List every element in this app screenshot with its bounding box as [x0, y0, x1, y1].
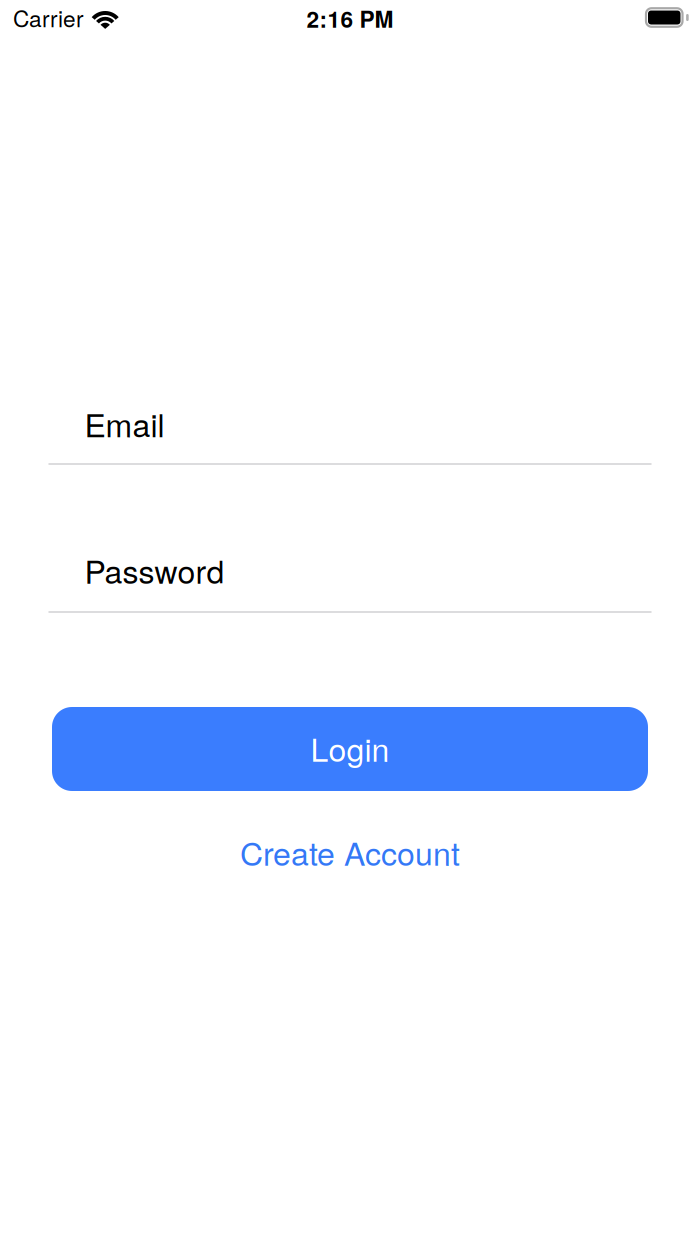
button[interactable]: Password — [0, 533, 700, 613]
staticText: Carrier — [13, 1, 84, 34]
staticText: Create Account — [240, 829, 460, 875]
button[interactable]: Login — [52, 707, 648, 791]
staticText: Login — [310, 725, 389, 771]
staticText: Password — [84, 547, 224, 593]
staticText: 2:16 PM — [306, 2, 393, 35]
button[interactable]: Create Account — [240, 829, 460, 875]
staticText: Email — [84, 400, 164, 446]
button[interactable]: Email — [0, 385, 700, 465]
